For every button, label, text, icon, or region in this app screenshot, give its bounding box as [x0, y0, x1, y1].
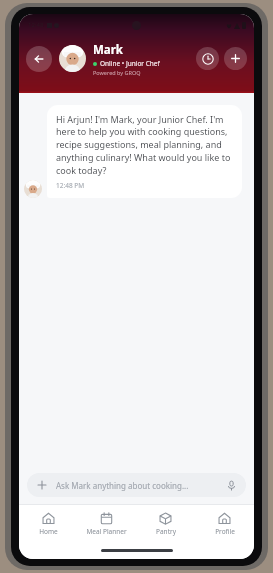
staticText: Powered by GROQ: [93, 69, 141, 76]
staticText: Ask Mark anything about cooking...: [56, 480, 189, 491]
button[interactable]: Add attachment: [35, 478, 49, 492]
button[interactable]: Home: [19, 505, 77, 542]
button[interactable]: Pantry: [136, 505, 195, 542]
staticText: 12:48 PM: [56, 181, 85, 190]
staticText: Mark: [93, 42, 124, 58]
button[interactable]: Meal Planner: [77, 505, 136, 542]
button[interactable]: Add attachment: [27, 473, 246, 497]
button[interactable]: Voice input: [224, 478, 238, 492]
button[interactable]: New chat: [224, 47, 247, 70]
staticText: Home: [39, 527, 58, 536]
button[interactable]: Back: [26, 46, 52, 72]
staticText: 12:48: [28, 21, 44, 29]
staticText: Online • Junior Chef: [100, 59, 160, 68]
button[interactable]: Profile: [195, 505, 254, 542]
staticText: Pantry: [156, 527, 176, 536]
staticText: Profile: [215, 527, 235, 536]
button[interactable]: Hi Arjun! I'm Mark, your Junior Chef. I'…: [47, 105, 242, 198]
staticText: Meal Planner: [86, 527, 127, 536]
staticText: Hi Arjun! I'm Mark, your Junior Chef. I'…: [56, 113, 233, 177]
button[interactable]: Chat history: [196, 47, 219, 70]
